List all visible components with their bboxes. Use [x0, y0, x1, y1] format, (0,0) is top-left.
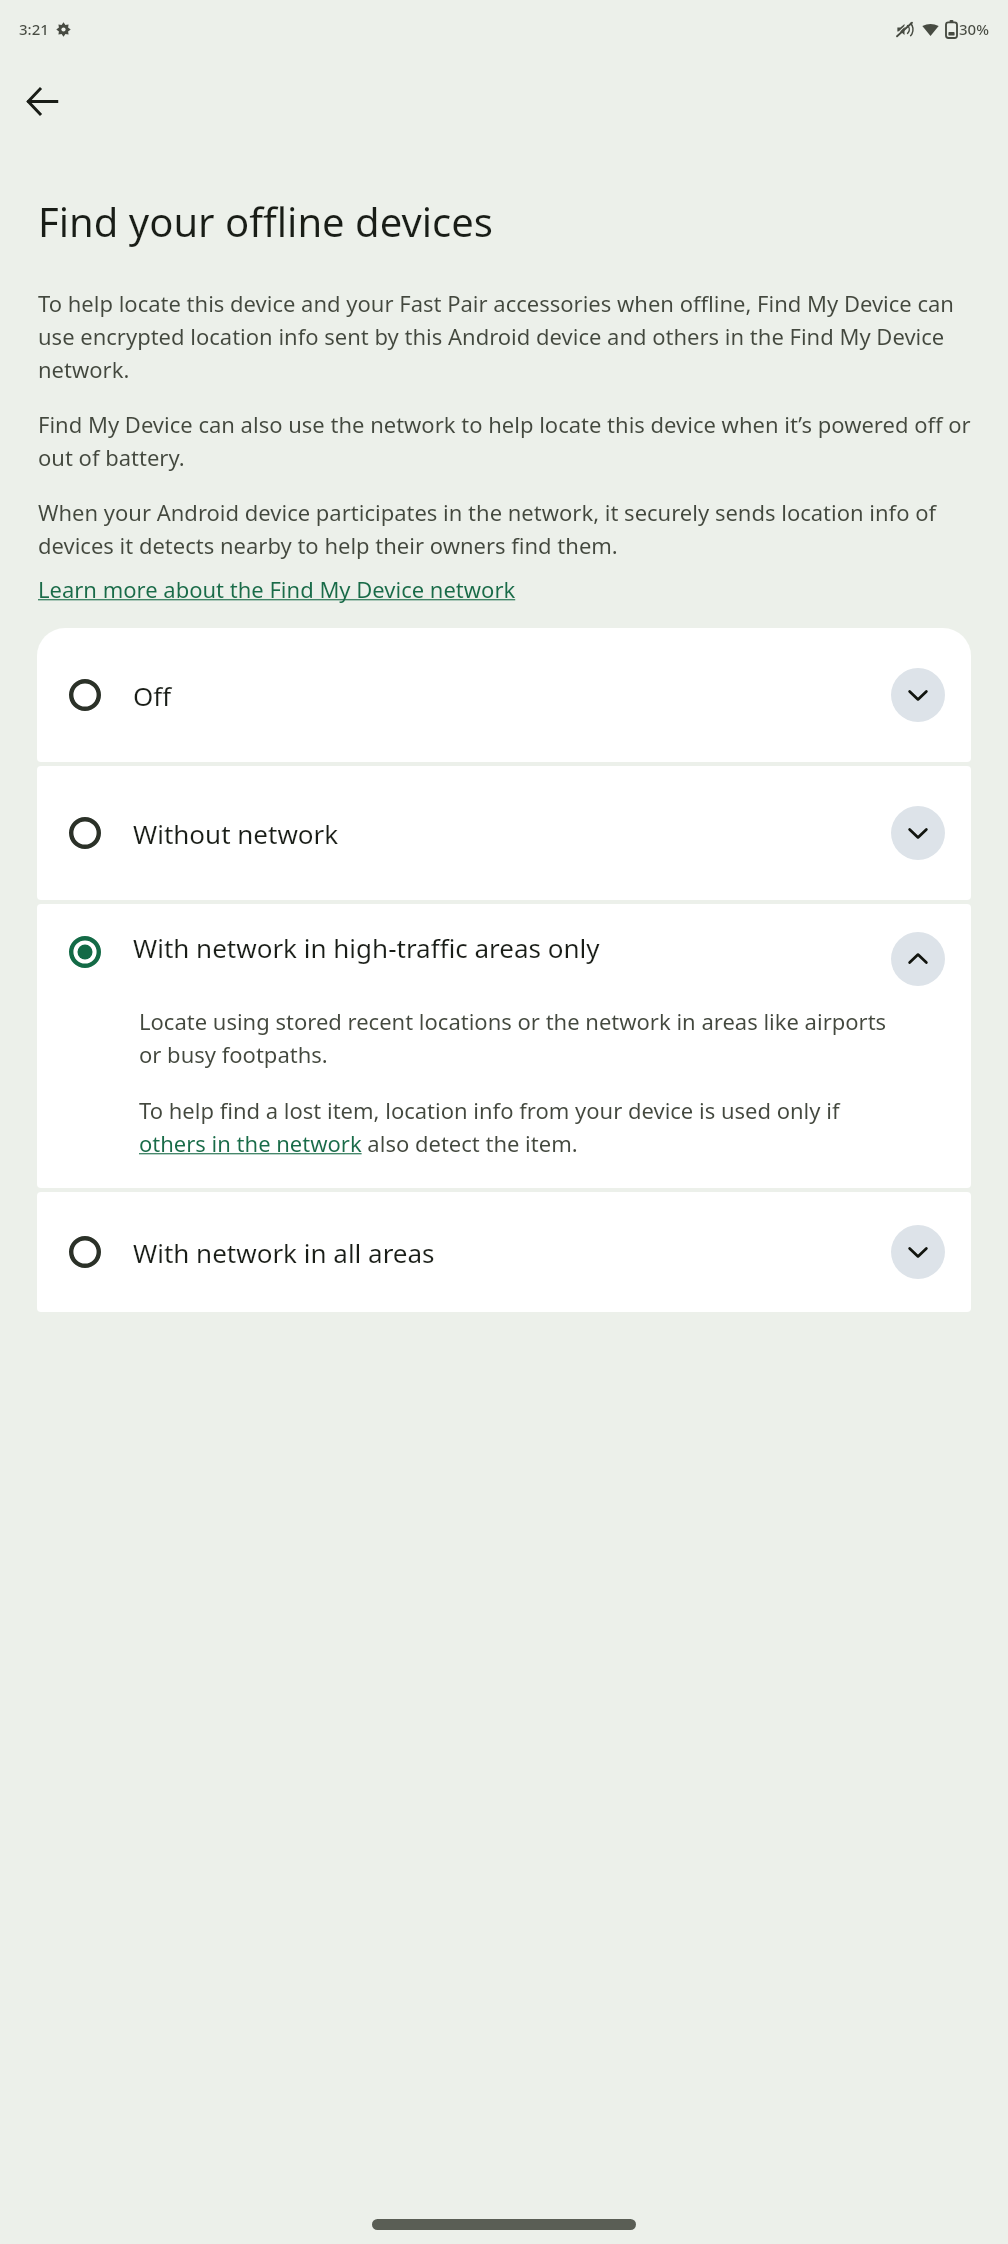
button[interactable]: With network in high-traffic areas only — [37, 904, 971, 1188]
button[interactable]: Expand — [891, 806, 945, 860]
staticText: To help locate this device and your Fast… — [38, 288, 974, 384]
button[interactable]: Learn more about the Find My Device netw… — [38, 574, 516, 604]
button[interactable]: Without network — [37, 766, 971, 900]
staticText: Learn more about the Find My Device netw… — [38, 574, 516, 604]
button[interactable]: Off — [37, 628, 971, 762]
staticText: When your Android device participates in… — [38, 497, 974, 560]
staticText: To help find a lost item, location info … — [139, 1095, 905, 1158]
button[interactable]: With network in all areas — [37, 1192, 971, 1312]
button[interactable]: Collapse — [891, 932, 945, 986]
staticText: Off — [133, 678, 879, 713]
button[interactable]: Expand — [891, 1225, 945, 1279]
staticText: 30% — [959, 19, 989, 39]
staticText: Without network — [133, 816, 879, 851]
button[interactable]: Back — [8, 67, 76, 135]
staticText: Find your offline devices — [38, 194, 493, 248]
staticText: Locate using stored recent locations or … — [139, 1006, 905, 1069]
button[interactable]: Expand — [891, 668, 945, 722]
staticText: Find My Device can also use the network … — [38, 409, 974, 472]
staticText: 3:21 — [19, 19, 49, 39]
staticText: With network in all areas — [133, 1235, 879, 1270]
staticText: With network in high-traffic areas only — [133, 930, 879, 965]
